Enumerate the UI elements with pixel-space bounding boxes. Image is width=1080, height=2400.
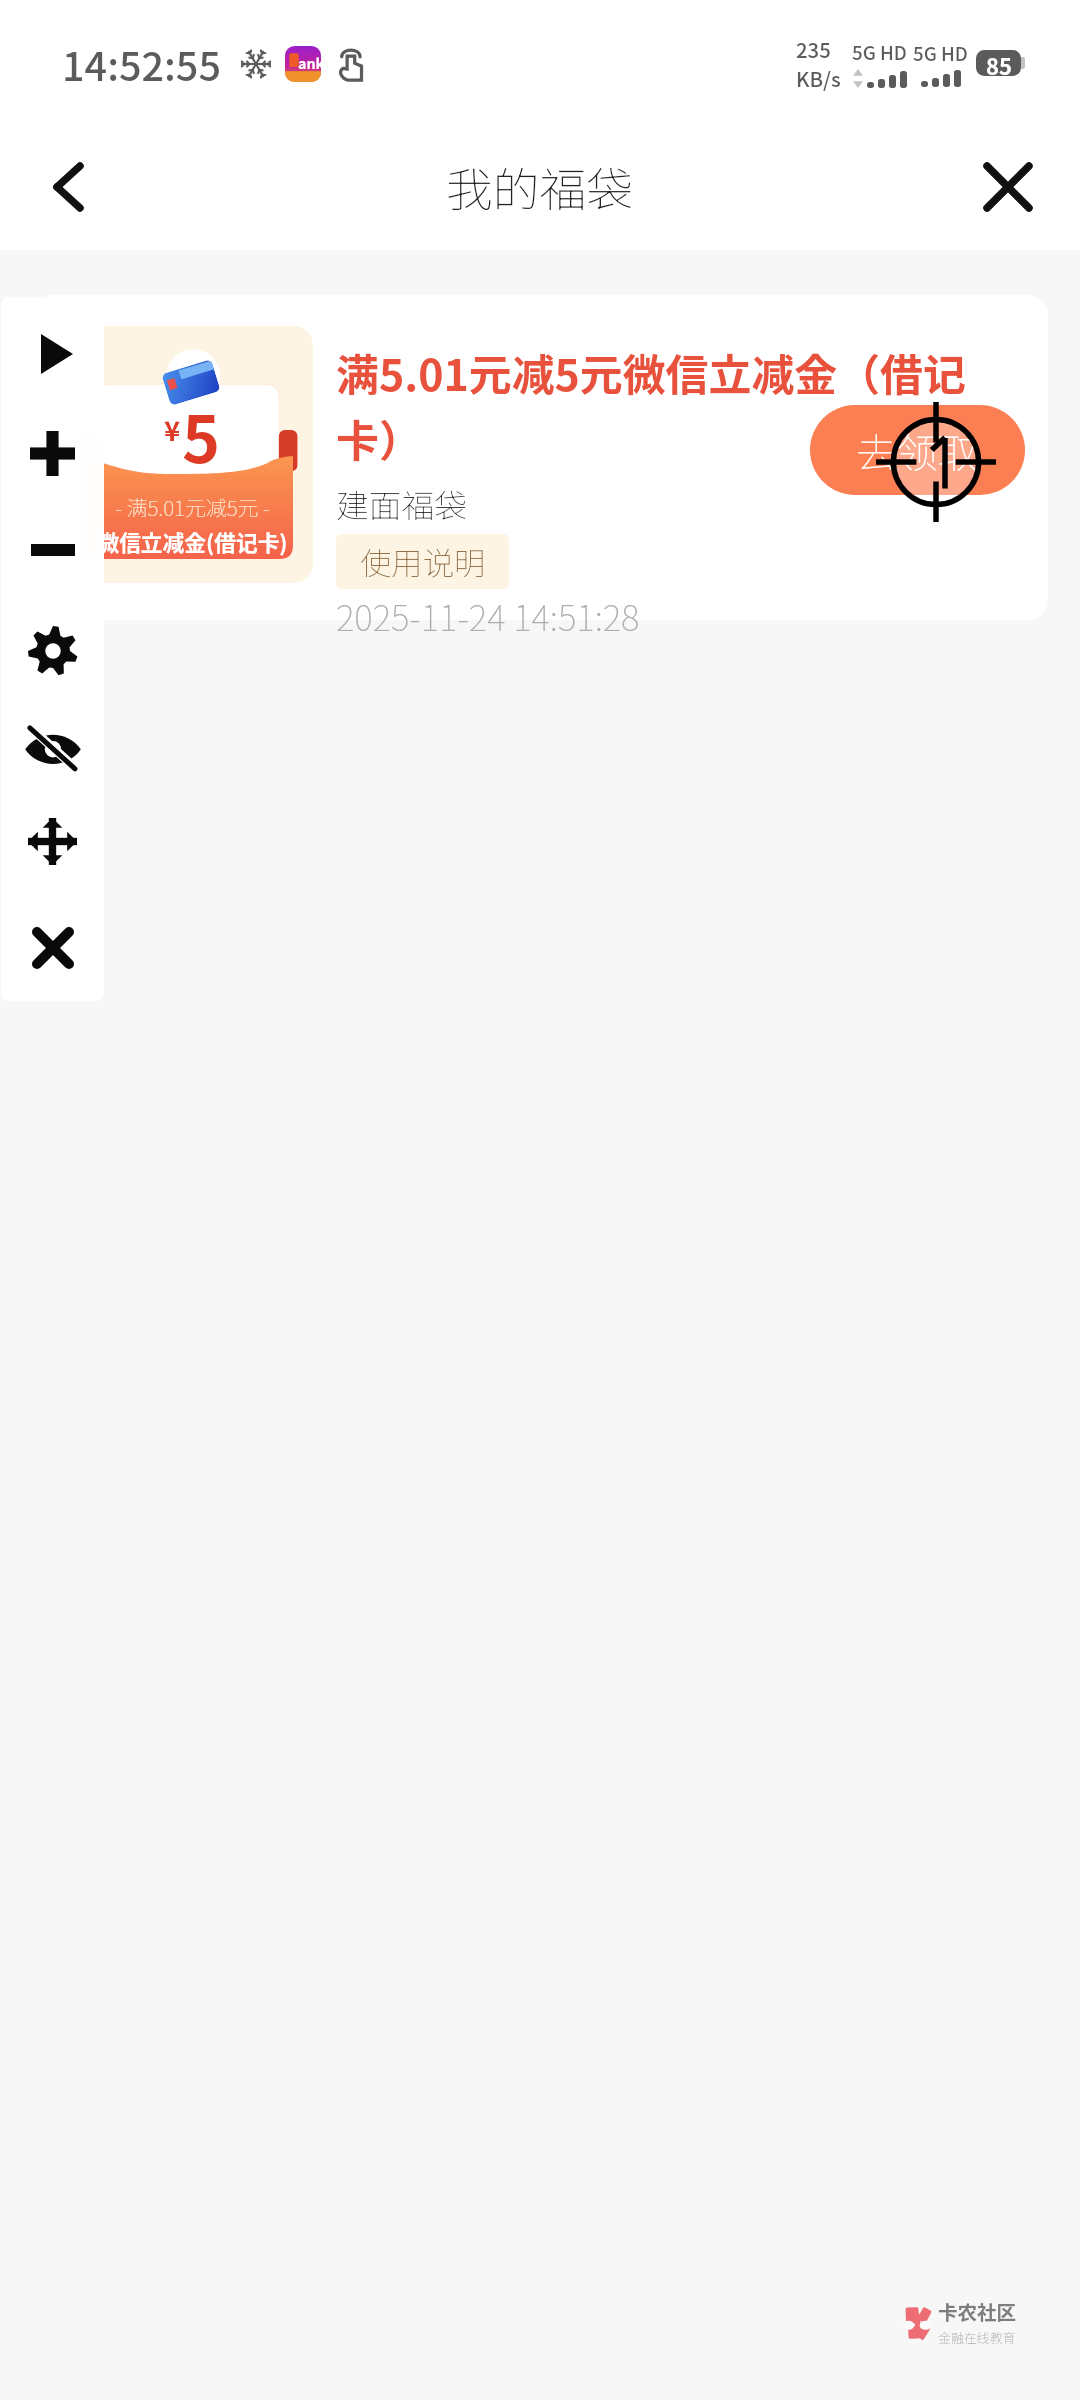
staticText: 5 <box>182 388 221 482</box>
button[interactable]: ¥ <box>32 295 1048 620</box>
staticText: 去领取 <box>856 421 979 480</box>
button[interactable]: Close <box>1 898 104 998</box>
button[interactable]: Zoom out <box>1 500 104 600</box>
staticText: - 满5.01元减5元 - <box>115 492 270 522</box>
staticText: ¥ <box>164 409 181 449</box>
staticText: 我的福袋 <box>446 153 634 221</box>
staticText: 85 <box>986 50 1012 75</box>
staticText: KB/s <box>796 63 841 92</box>
staticText: 使用说明 <box>360 539 486 584</box>
button[interactable]: Settings <box>1 601 104 701</box>
staticText: 14:52:55 <box>62 35 222 92</box>
staticText: 235 <box>796 34 831 63</box>
button[interactable]: Zoom in <box>1 403 104 503</box>
staticText: 卡农社区 <box>938 2297 1017 2325</box>
staticText: 5G HD <box>852 38 907 65</box>
staticText: 5G HD <box>913 39 968 66</box>
button[interactable]: Close <box>936 142 1079 232</box>
staticText: 建面福袋 <box>336 480 467 527</box>
staticText: 微信立减金(借记卡) <box>97 526 288 557</box>
staticText: 金融在线教育 <box>938 2328 1016 2347</box>
staticText: 2025-11-24 14:51:28 <box>336 590 640 641</box>
staticText: ank <box>298 52 321 73</box>
button[interactable]: Hide <box>1 698 104 798</box>
button[interactable]: 去领取 <box>810 405 1025 495</box>
button[interactable]: Play <box>1 304 104 404</box>
button[interactable]: 使用说明 <box>336 534 509 589</box>
button[interactable]: Back <box>0 142 140 232</box>
staticText: 满5.01元减5元微信立减金（借记卡） <box>336 341 974 469</box>
button[interactable]: Move <box>1 791 104 891</box>
